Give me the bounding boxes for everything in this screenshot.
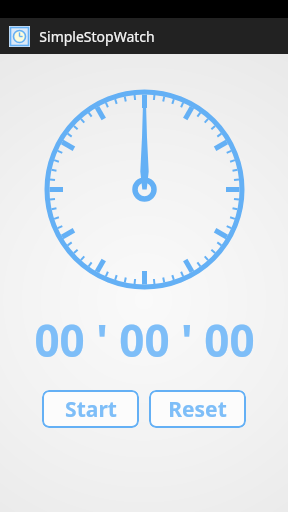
staticText: Reset <box>168 395 227 424</box>
button[interactable]: Start <box>42 390 139 428</box>
staticText: Start <box>65 395 117 424</box>
button[interactable]: Reset <box>149 390 246 428</box>
staticText: 00 ' 00 ' 00 <box>34 310 255 370</box>
staticText: SimpleStopWatch <box>39 27 155 46</box>
other: App icon <box>9 26 30 47</box>
